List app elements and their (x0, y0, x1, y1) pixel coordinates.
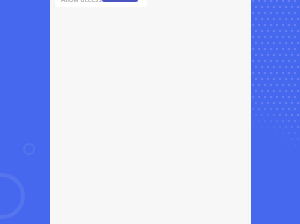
staticText: Allow access (61, 0, 102, 5)
button[interactable]: Allow access (55, 0, 147, 7)
button[interactable]: ALLOW (102, 0, 138, 2)
